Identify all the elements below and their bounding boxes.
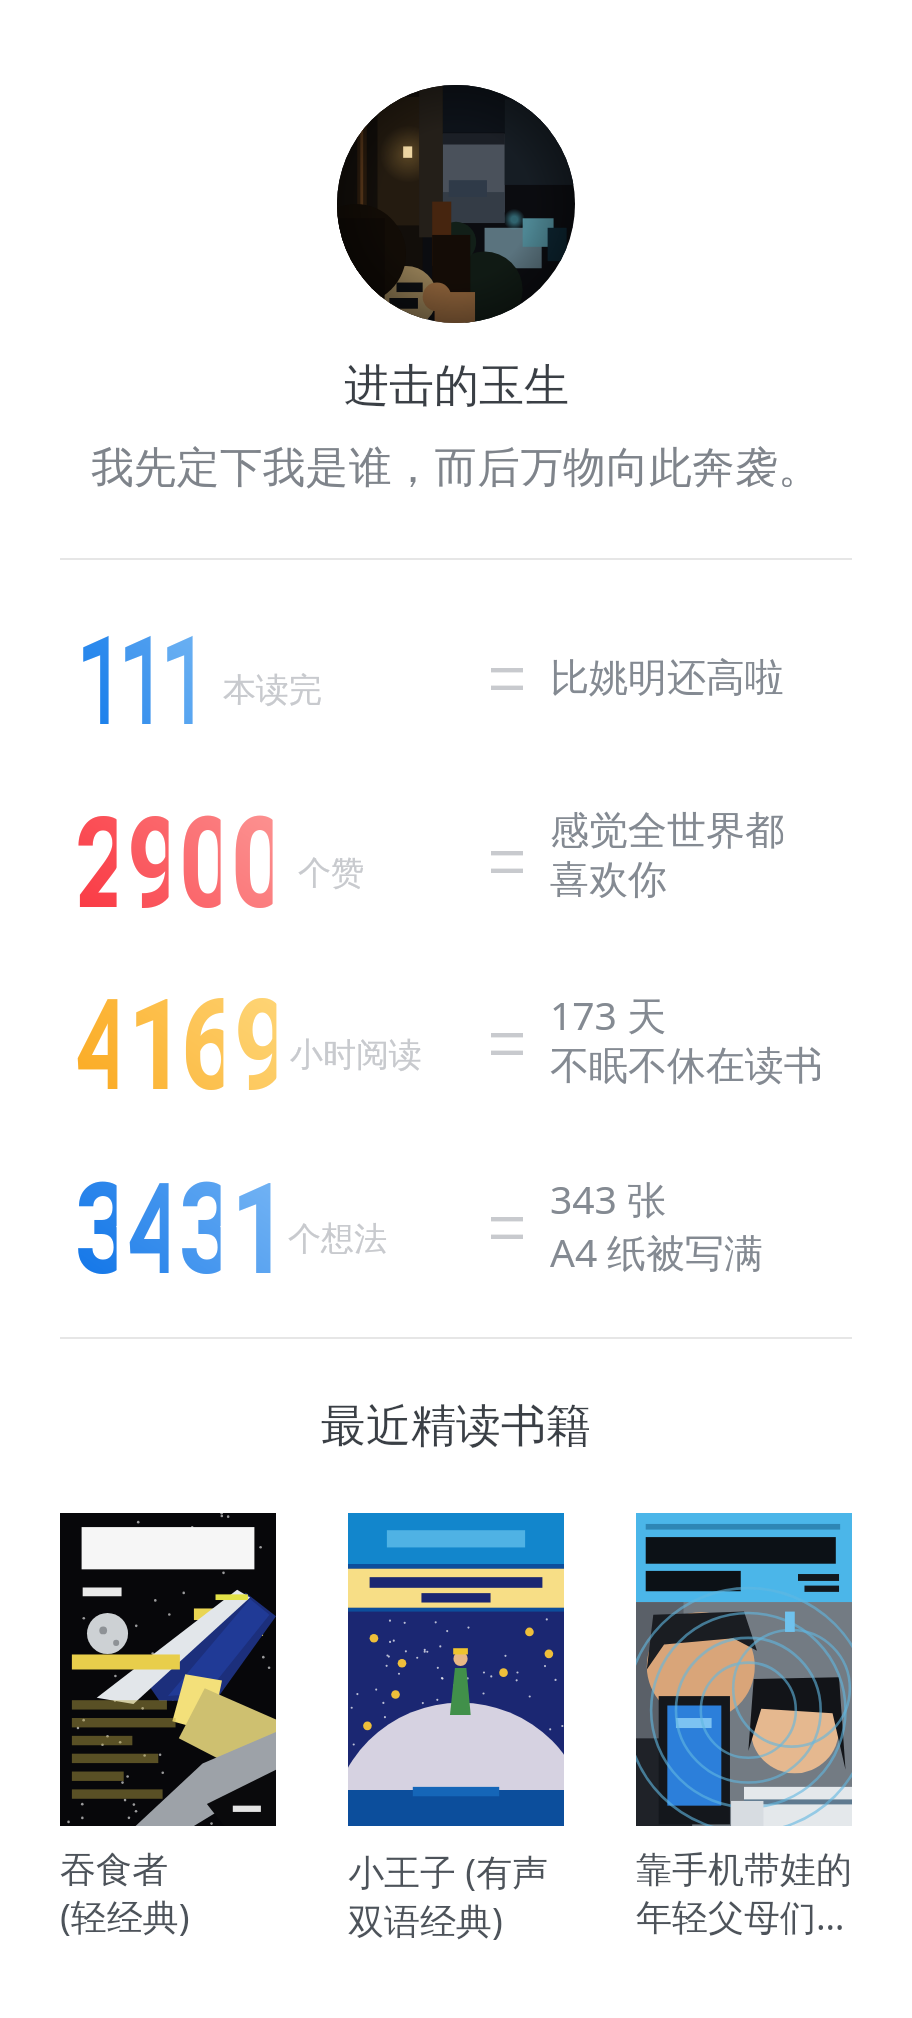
staticText: 3 — [75, 1156, 117, 1304]
staticText: A4 纸被写满 — [550, 1225, 764, 1278]
staticText: 0 — [231, 790, 273, 938]
staticText: 6 — [181, 972, 223, 1120]
staticText: 3 — [179, 1156, 221, 1304]
staticText: 4 — [127, 1156, 169, 1304]
button[interactable]: 小王子 (有声 — [348, 1513, 564, 1945]
button[interactable]: 靠手机带娃的 — [636, 1513, 852, 1941]
staticText: 1 — [159, 607, 193, 755]
staticText: 喜欢你 — [550, 855, 667, 904]
staticText: 343 张 — [550, 1172, 667, 1225]
staticText: 9 — [234, 972, 276, 1120]
staticText: 感觉全世界都 — [550, 806, 784, 855]
staticText: 年轻父母们… — [636, 1892, 845, 1941]
staticText: 个赞 — [298, 852, 364, 894]
staticText: 1 — [75, 607, 109, 755]
staticText: 173 天 — [550, 988, 667, 1041]
staticText: 双语经典) — [348, 1896, 503, 1945]
staticText: 我先定下我是谁，而后万物向此奔袭。 — [91, 441, 821, 495]
staticText: 小王子 (有声 — [348, 1847, 549, 1896]
staticText: 个想法 — [288, 1218, 387, 1260]
staticText: 1 — [231, 1156, 273, 1304]
staticText: 2 — [75, 790, 117, 938]
staticText: 不眠不休在读书 — [550, 1041, 823, 1090]
staticText: 1 — [128, 972, 170, 1120]
staticText: 4 — [75, 972, 117, 1120]
staticText: 小时阅读 — [290, 1034, 422, 1076]
staticText: 9 — [127, 790, 169, 938]
staticText: 1 — [117, 607, 151, 755]
staticText: 靠手机带娃的 — [636, 1847, 852, 1892]
staticText: 0 — [179, 790, 221, 938]
button[interactable]: 吞食者 — [60, 1513, 276, 1941]
staticText: 最近精读书籍 — [321, 1398, 591, 1455]
staticText: (轻经典) — [60, 1892, 190, 1941]
staticText: 比姚明还高啦 — [550, 653, 784, 702]
staticText: 吞食者 — [60, 1847, 168, 1892]
staticText: 本读完 — [223, 669, 322, 711]
staticText: 进击的玉生 — [344, 358, 569, 415]
button[interactable]: User avatar — [337, 85, 575, 323]
